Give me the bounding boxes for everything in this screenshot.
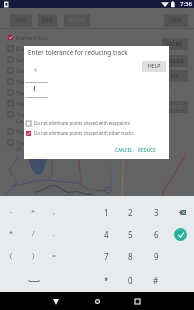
staticText: ) [32, 251, 35, 261]
staticText: REDUCE [138, 147, 156, 153]
button[interactable]: 1 [95, 204, 117, 220]
button[interactable]: + [22, 204, 44, 220]
button[interactable]: . [43, 226, 65, 242]
staticText: * [104, 275, 109, 286]
staticText: Track 2019- vil [16, 139, 46, 152]
staticText: 4 [34, 67, 37, 74]
staticText: + [31, 207, 36, 217]
button[interactable]: Track 2019-... [0, 99, 194, 110]
staticText: Ruthie's Run [16, 34, 49, 41]
button[interactable]: 2 [119, 204, 141, 220]
button[interactable]: Recent apps [128, 296, 147, 307]
button[interactable]: Track 2019-... [0, 127, 194, 138]
button[interactable]: HELP [142, 61, 166, 72]
button[interactable]: CANCEL [113, 145, 135, 155]
staticText: HELP [170, 17, 183, 24]
button[interactable]: Home [88, 296, 107, 307]
staticText: CANCEL [115, 147, 133, 153]
button[interactable]: - [0, 204, 22, 220]
staticText: HELP [148, 63, 161, 70]
staticText: 3 [154, 207, 159, 218]
staticText: Track 2019-... [16, 100, 50, 107]
button[interactable]: Backspace [172, 204, 192, 220]
button[interactable]: Track 2019-... [0, 77, 194, 88]
button[interactable]: COLOR [162, 55, 188, 67]
button[interactable]: Ruthie's Run2 [0, 44, 194, 55]
button[interactable]: Back [46, 296, 65, 307]
button[interactable]: FIT [162, 70, 188, 82]
button[interactable]: HELP [164, 14, 188, 27]
button[interactable]: 0 [119, 272, 141, 288]
button[interactable]: FILE [10, 14, 32, 27]
staticText: Sams Knob2 [16, 67, 48, 74]
staticText: Do not eliminate points shared with wayp… [34, 120, 130, 126]
staticText: EDIT [42, 17, 54, 24]
staticText: Track 2019-... [16, 128, 50, 135]
staticText: COLOR [167, 58, 184, 65]
staticText: Track 2019-... [16, 89, 50, 96]
staticText: , [53, 207, 55, 217]
staticText: - [10, 207, 13, 217]
button[interactable]: 8 [119, 248, 141, 264]
staticText: 6 [154, 229, 159, 240]
button[interactable]: MONE [162, 38, 188, 50]
button[interactable]: Do not eliminate points shared with othe… [26, 128, 171, 138]
button[interactable]: Track 2019-... [0, 88, 194, 99]
staticText: Enter tolerance for reducing track [28, 48, 128, 57]
button[interactable]: Track 2019- vil [0, 138, 194, 155]
staticText: FILE [16, 17, 26, 24]
button[interactable]: Ruthie's Run [0, 33, 194, 44]
button[interactable]: Sams Knob2 [0, 66, 194, 77]
staticText: 5 [128, 229, 133, 240]
button[interactable]: , [43, 204, 65, 220]
staticText: 8 [128, 251, 133, 262]
button[interactable]: / [22, 226, 44, 242]
button[interactable]: 4 [95, 226, 117, 242]
button[interactable]: * [0, 226, 22, 242]
staticText: 7 [104, 251, 109, 262]
staticText: IMAGE [167, 104, 183, 111]
staticText: 0 [128, 275, 133, 286]
staticText: . [53, 229, 55, 239]
staticText: Sams Knob [16, 56, 45, 63]
button[interactable]: # [145, 272, 167, 288]
button[interactable]: Space [25, 276, 43, 286]
staticText: 2 [128, 207, 133, 218]
button[interactable]: 3 [145, 204, 167, 220]
staticText: 1 [104, 207, 109, 218]
button[interactable]: IMAGE [162, 101, 188, 113]
staticText: TRACKS [68, 17, 87, 24]
button[interactable]: ( [0, 248, 22, 264]
button[interactable]: Enter [170, 226, 190, 242]
button[interactable]: 9 [145, 248, 167, 264]
button[interactable]: * [95, 272, 117, 288]
staticText: * [9, 229, 13, 239]
button[interactable]: 5 [119, 226, 141, 242]
staticText: Ruthie's Run2 [16, 45, 52, 52]
staticText: = [52, 251, 57, 261]
button[interactable]: = [43, 248, 65, 264]
button[interactable]: 6 [145, 226, 167, 242]
staticText: 9 [154, 251, 159, 262]
button[interactable]: Track 2019- Ca [0, 110, 194, 127]
staticText: Track 2019- Ca [16, 111, 46, 124]
button[interactable]: REDUCE [136, 145, 158, 155]
button[interactable]: EDIT [38, 14, 57, 27]
staticText: 7:36 [180, 0, 192, 8]
button[interactable]: 7 [95, 248, 117, 264]
staticText: FIT [171, 73, 179, 80]
staticText: Do not eliminate points shared with othe… [34, 130, 134, 136]
staticText: 4 [104, 229, 109, 240]
button[interactable]: TRACKS [64, 14, 90, 27]
button[interactable]: Do not eliminate points shared with wayp… [26, 118, 171, 128]
staticText: MONE [167, 41, 183, 48]
staticText: Track 2019-... [16, 78, 50, 85]
staticText: ( [10, 251, 13, 261]
staticText: # [153, 275, 159, 286]
button[interactable]: ) [22, 248, 44, 264]
button[interactable]: Sams Knob [0, 55, 194, 66]
staticText: / [32, 229, 35, 239]
